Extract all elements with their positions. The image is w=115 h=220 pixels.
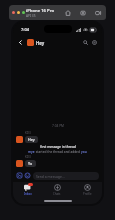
staticText: started the thread and added bbox=[35, 150, 81, 154]
staticText: 7:04 PM bbox=[52, 124, 64, 128]
staticText: Profile bbox=[83, 192, 92, 196]
button[interactable]: Screenshot bbox=[79, 9, 87, 17]
staticText: Inbox bbox=[24, 192, 32, 196]
staticText: KD3 bbox=[25, 155, 31, 159]
button[interactable]: KD3 bbox=[13, 131, 102, 143]
staticText: first message in thread bbox=[40, 144, 76, 148]
button[interactable]: Inbox bbox=[13, 182, 42, 198]
staticText: KD3 bbox=[25, 131, 31, 135]
button[interactable]: Home bbox=[64, 9, 72, 17]
staticText: API 35 bbox=[26, 14, 36, 18]
button[interactable]: Emoji bbox=[24, 172, 31, 179]
staticText: Hey bbox=[28, 137, 35, 142]
button[interactable] bbox=[12, 11, 15, 14]
button[interactable]: Send a message... bbox=[33, 172, 99, 180]
staticText: 7:04 bbox=[21, 27, 29, 32]
button[interactable]: Hey bbox=[27, 39, 81, 46]
staticText: mye bbox=[28, 150, 35, 154]
button[interactable] bbox=[17, 11, 20, 14]
staticText: you bbox=[81, 150, 87, 154]
staticText: Yo bbox=[28, 161, 33, 166]
staticText: Chats bbox=[53, 192, 61, 196]
button[interactable]: KD3 bbox=[13, 155, 102, 167]
staticText: Send a message... bbox=[36, 174, 65, 179]
button[interactable]: Profile bbox=[72, 182, 102, 198]
button[interactable]: Add attachment bbox=[16, 172, 23, 179]
button[interactable]: Search bbox=[81, 38, 90, 47]
button[interactable]: Settings bbox=[90, 38, 99, 47]
button[interactable]: Chats bbox=[42, 182, 72, 198]
staticText: iPhone 16 Pro bbox=[26, 8, 54, 14]
button[interactable]: Back bbox=[16, 38, 25, 47]
button[interactable] bbox=[22, 11, 25, 14]
button[interactable]: Record bbox=[94, 9, 102, 17]
staticText: Hey bbox=[36, 40, 45, 46]
